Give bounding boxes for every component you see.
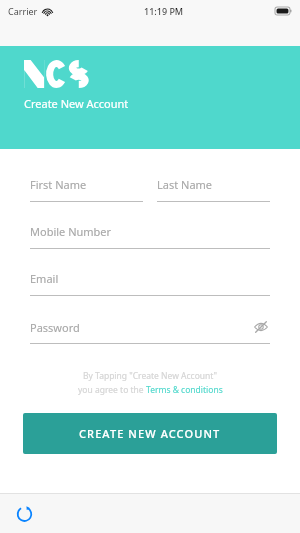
button[interactable]: Reload: [8, 497, 40, 529]
button[interactable]: Show password: [252, 318, 270, 336]
button[interactable]: Mobile Number: [30, 224, 270, 249]
staticText: Create New Account: [24, 96, 129, 111]
staticText: you agree to the: [78, 384, 146, 396]
staticText: CREATE NEW ACCOUNT: [79, 426, 221, 441]
button[interactable]: CREATE NEW ACCOUNT: [23, 413, 277, 454]
staticText: Password: [30, 320, 252, 335]
staticText: 11:19 PM: [144, 5, 184, 17]
button[interactable]: First Name: [30, 177, 143, 202]
staticText: Mobile Number: [30, 224, 270, 239]
staticText: Email: [30, 271, 270, 286]
staticText: Terms & conditions: [146, 384, 223, 396]
button[interactable]: Password: [30, 318, 270, 344]
staticText: First Name: [30, 177, 143, 192]
staticText: Carrier: [8, 5, 38, 17]
staticText: By Tapping "Create New Account": [83, 370, 217, 382]
button[interactable]: Last Name: [157, 177, 270, 202]
button[interactable]: Terms & conditions: [146, 384, 223, 396]
button[interactable]: Email: [30, 271, 270, 296]
staticText: Last Name: [157, 177, 270, 192]
